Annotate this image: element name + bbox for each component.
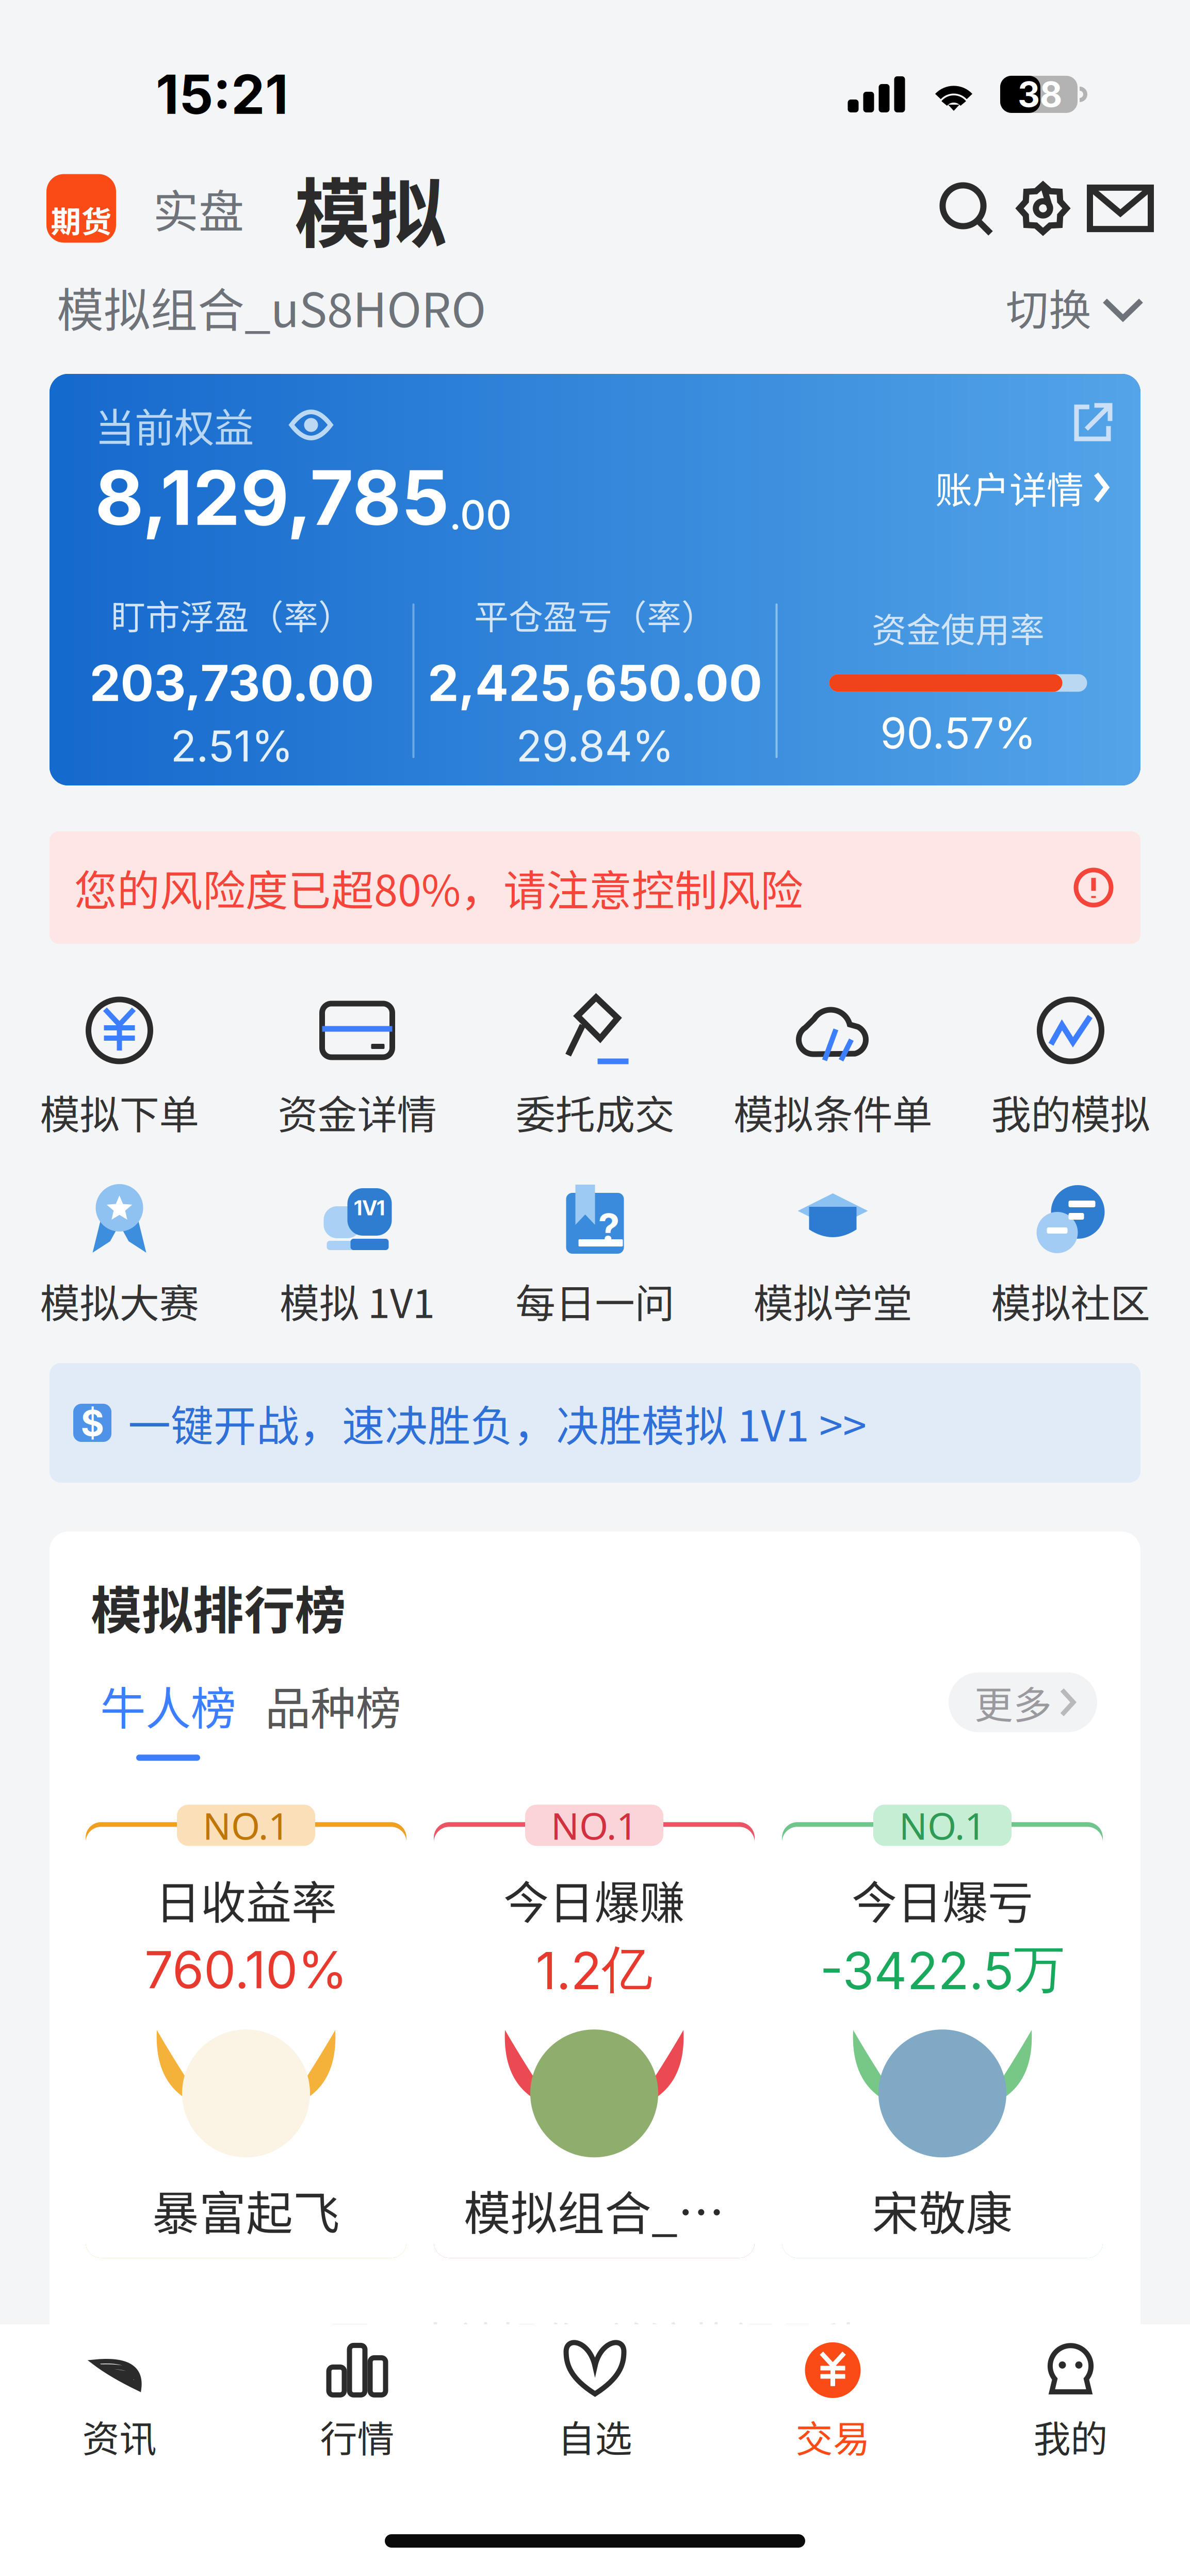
button[interactable]: 期货 app icon	[46, 174, 116, 243]
staticText: NO.1	[203, 1800, 289, 1851]
staticText: 15:21	[156, 62, 288, 127]
staticText: 模拟	[295, 154, 446, 263]
button[interactable]: 委托成交	[476, 994, 714, 1141]
button[interactable]: 我的模拟	[952, 994, 1189, 1141]
button[interactable]: 账户详情	[935, 461, 1110, 514]
staticText: 29.84%	[516, 720, 674, 772]
staticText: 切换	[1006, 276, 1091, 338]
button[interactable]: Settings	[1004, 174, 1082, 243]
button[interactable]: 1V1	[238, 1183, 476, 1330]
staticText: $	[81, 1401, 104, 1444]
staticText: 资金详情	[278, 1083, 437, 1141]
button[interactable]: 模拟学堂	[714, 1183, 952, 1330]
staticText: 品种榜	[265, 1672, 401, 1738]
button[interactable]: 我的	[952, 2342, 1189, 2460]
staticText: 2.51%	[170, 720, 293, 772]
staticText: -3422.5万	[820, 1938, 1065, 2002]
button[interactable]: 行情	[238, 2342, 476, 2460]
button[interactable]: $	[50, 1363, 1140, 1483]
button[interactable]: 牛人榜	[86, 1672, 251, 1761]
staticText: 模拟学堂	[753, 1272, 912, 1330]
button[interactable]: 模拟下单	[1, 994, 238, 1141]
staticText: 今日爆赚	[503, 1867, 685, 1932]
button[interactable]: 模拟条件单	[714, 994, 952, 1141]
staticText: 1.2亿	[536, 1938, 653, 2002]
staticText: 行情	[320, 2409, 394, 2463]
staticText: 模拟组合_uS8HORO	[57, 273, 486, 341]
staticText: 模拟社区	[991, 1272, 1150, 1330]
button[interactable]: 实盘	[116, 174, 263, 243]
staticText: ?	[598, 1204, 620, 1251]
staticText: 牛人榜	[100, 1672, 236, 1738]
staticText: 围观大神操作 关注热门品种	[328, 2309, 862, 2370]
staticText: 模拟大赛	[40, 1272, 199, 1330]
button[interactable]: ?	[476, 1183, 714, 1330]
button[interactable]: 模拟大赛	[1, 1183, 238, 1330]
staticText: 自选	[558, 2409, 632, 2463]
staticText: 2,425,650.00	[428, 653, 762, 713]
staticText: 期货	[51, 198, 112, 242]
button[interactable]: 切换	[1006, 276, 1141, 338]
staticText: 您的风险度已超80%，请注意控制风险	[74, 857, 803, 918]
staticText: 一键开战，速决胜负，决胜模拟 1V1 >>	[128, 1392, 867, 1454]
staticText: 暴富起飞	[152, 2176, 340, 2244]
staticText: 每日一问	[516, 1272, 674, 1330]
staticText: 760.10%	[144, 1939, 348, 2000]
button[interactable]: 品种榜	[251, 1672, 416, 1738]
staticText: 模拟组合_…	[464, 2176, 725, 2244]
staticText: 模拟 1V1	[280, 1272, 435, 1330]
staticText: 模拟条件单	[733, 1083, 932, 1141]
button[interactable]: 模拟	[263, 174, 446, 243]
staticText: 委托成交	[516, 1083, 674, 1141]
button[interactable]: 更多	[949, 1672, 1097, 1732]
staticText: 模拟下单	[40, 1083, 199, 1141]
button[interactable]: 今日爆亏	[782, 1822, 1103, 2276]
staticText: 实盘	[153, 175, 244, 241]
staticText: NO.1	[551, 1800, 638, 1851]
staticText: .00	[449, 491, 512, 539]
staticText: 90.57%	[880, 707, 1036, 759]
staticText: 日收益率	[155, 1867, 337, 1932]
staticText: 交易	[796, 2409, 870, 2463]
button[interactable]: 交易	[714, 2342, 952, 2460]
staticText: 平仓盈亏（率）	[474, 590, 716, 640]
staticText: 今日爆亏	[852, 1867, 1033, 1932]
staticText: 模拟排行榜	[91, 1570, 346, 1644]
staticText: 宋敬康	[872, 2176, 1013, 2244]
staticText: 当前权益	[95, 396, 254, 454]
button[interactable]: 日收益率	[86, 1822, 406, 2276]
staticText: 38	[1018, 74, 1062, 115]
button[interactable]: Share	[1075, 406, 1110, 440]
staticText: 我的	[1033, 2409, 1108, 2463]
staticText: NO.1	[899, 1800, 986, 1851]
staticText: 更多	[974, 1674, 1052, 1730]
button[interactable]: 模拟社区	[952, 1183, 1189, 1330]
staticText: 账户详情	[935, 461, 1084, 514]
button[interactable]: Messages	[1082, 174, 1159, 243]
staticText: 资金使用率	[872, 603, 1045, 652]
button[interactable]: 资金详情	[238, 994, 476, 1141]
staticText: 8,129,785	[95, 452, 449, 543]
staticText: 1V1	[354, 1195, 385, 1220]
staticText: 盯市浮盈（率）	[111, 590, 353, 640]
button[interactable]: 今日爆赚	[434, 1822, 755, 2276]
button[interactable]: 自选	[476, 2342, 714, 2460]
button[interactable]: 资讯	[1, 2342, 238, 2460]
staticText: 203,730.00	[89, 653, 374, 713]
button[interactable]: Search	[927, 174, 1004, 243]
staticText: 我的模拟	[991, 1083, 1150, 1141]
staticText: 资讯	[82, 2409, 157, 2463]
